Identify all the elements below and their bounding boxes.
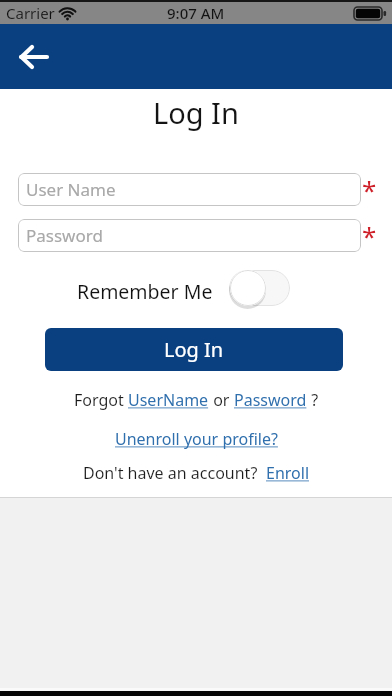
staticText: User Name [26, 178, 116, 201]
staticText: * [362, 172, 377, 200]
staticText: ? [307, 389, 319, 411]
staticText: Carrier [6, 3, 55, 23]
button[interactable]: UserName [128, 389, 209, 411]
staticText: Don't have an account? [83, 462, 266, 484]
staticText: * [362, 218, 377, 246]
button[interactable]: Unenroll your profile? [115, 428, 278, 450]
button[interactable]: User Name [18, 173, 361, 206]
button[interactable]: Password [18, 219, 361, 252]
button[interactable]: Log In [45, 328, 343, 371]
staticText: or [209, 389, 234, 411]
button[interactable] [229, 270, 290, 307]
staticText: Remember Me [77, 278, 213, 305]
staticText: Log In [153, 93, 239, 131]
staticText: 9:07 AM [167, 3, 225, 23]
staticText: Forgot [74, 389, 128, 411]
button[interactable]: Enroll [266, 462, 310, 484]
button[interactable] [14, 24, 54, 89]
staticText: Password [26, 224, 103, 247]
staticText: Log In [164, 336, 224, 363]
button[interactable]: Password [234, 389, 307, 411]
